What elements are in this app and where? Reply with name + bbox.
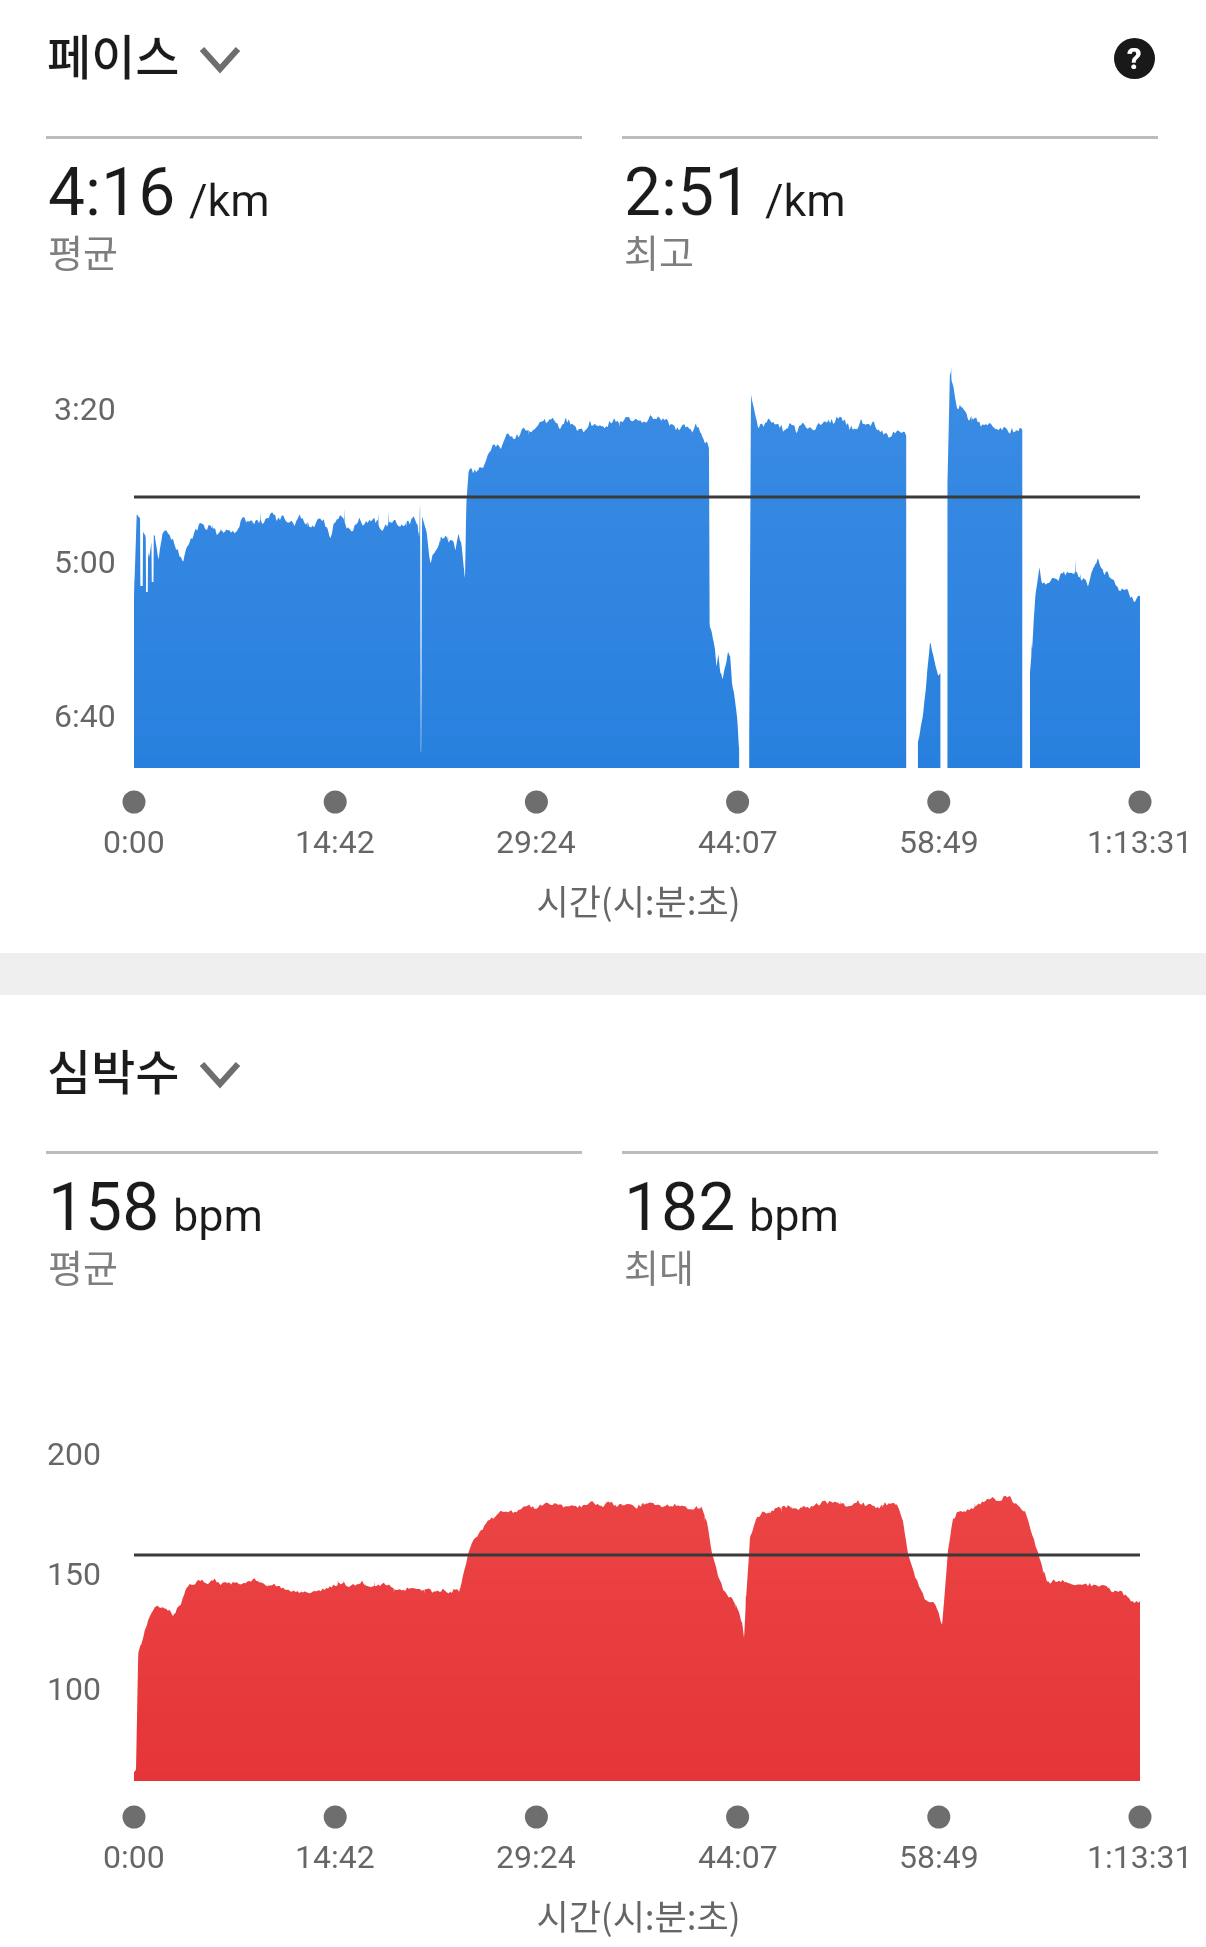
staticText: 시간(시:분:초) [536, 1889, 741, 1940]
staticText: 평균 [48, 223, 118, 278]
staticText: 4:16 [48, 154, 176, 231]
staticText: 시간(시:분:초) [536, 874, 741, 925]
staticText: bpm [173, 1189, 263, 1242]
staticText: 5:00 [54, 543, 116, 581]
staticText: 29:24 [496, 1838, 576, 1876]
staticText: 58:49 [899, 823, 979, 861]
staticText: 58:49 [899, 1838, 979, 1876]
staticText: 14:42 [295, 823, 375, 861]
staticText: bpm [749, 1189, 839, 1242]
staticText: 0:00 [103, 1838, 165, 1876]
staticText: 6:40 [54, 697, 116, 735]
staticText: 2:51 [624, 154, 752, 231]
staticText: 14:42 [295, 1838, 375, 1876]
staticText: 평균 [48, 1238, 118, 1293]
staticText: 150 [47, 1555, 101, 1593]
staticText: 페이스 [47, 19, 180, 83]
staticText: /km [189, 174, 270, 227]
button[interactable]: 심박수 [47, 1034, 241, 1098]
staticText: 3:20 [54, 390, 116, 428]
staticText: 44:07 [698, 1838, 778, 1876]
staticText: 최고 [624, 223, 694, 278]
staticText: 182 [624, 1169, 736, 1246]
staticText: 100 [47, 1670, 101, 1708]
staticText: 200 [47, 1435, 101, 1473]
staticText: ? [1127, 42, 1142, 76]
staticText: 1:13:31 [1087, 1838, 1193, 1876]
staticText: 158 [48, 1169, 160, 1246]
button[interactable]: 페이스 [47, 19, 241, 83]
staticText: 44:07 [698, 823, 778, 861]
staticText: 29:24 [496, 823, 576, 861]
staticText: 1:13:31 [1087, 823, 1193, 861]
staticText: 심박수 [47, 1034, 180, 1098]
button[interactable]: Help [1114, 38, 1155, 79]
staticText: /km [765, 174, 846, 227]
staticText: 최대 [624, 1238, 694, 1293]
staticText: 0:00 [103, 823, 165, 861]
